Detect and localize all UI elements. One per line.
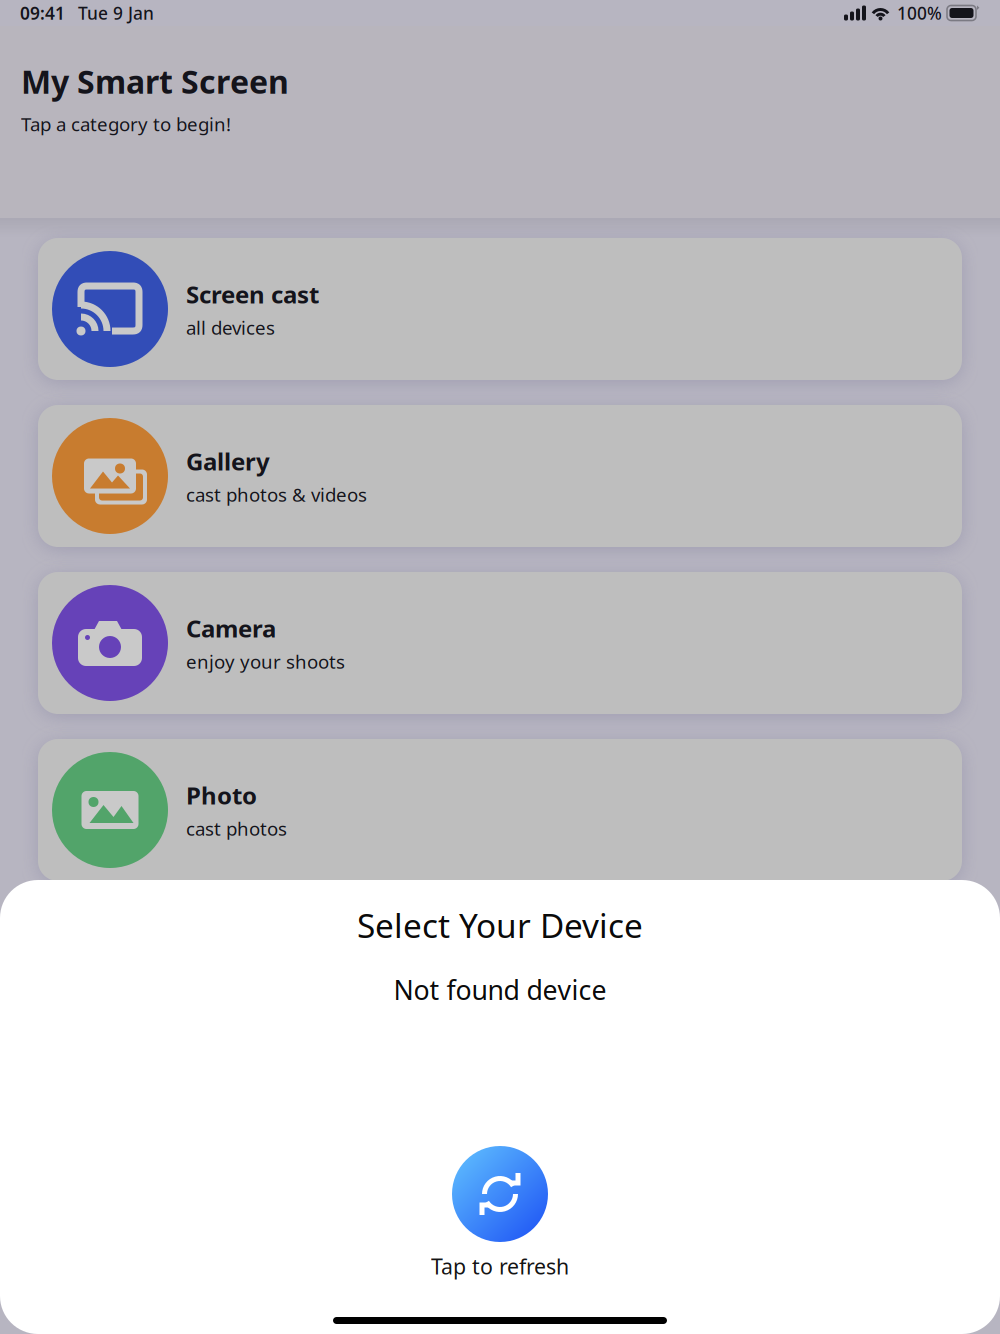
staticText: Gallery xyxy=(186,445,270,477)
staticText: cast photos xyxy=(186,816,287,841)
button[interactable]: Tap to refresh xyxy=(0,1146,1000,1280)
staticText: My Smart Screen xyxy=(21,60,289,102)
staticText: enjoy your shoots xyxy=(186,649,345,674)
staticText: 09:41 xyxy=(20,1,65,24)
staticText: Not found device xyxy=(393,972,606,1007)
button[interactable]: Camera xyxy=(38,572,962,714)
staticText: Select Your Device xyxy=(357,903,643,947)
button[interactable]: Screen cast xyxy=(38,238,962,380)
staticText: cast photos & videos xyxy=(186,482,367,507)
staticText: Tap a category to begin! xyxy=(21,111,231,136)
staticText: Tap to refresh xyxy=(431,1252,569,1280)
staticText: Camera xyxy=(186,612,276,644)
staticText: all devices xyxy=(186,315,275,340)
staticText: Photo xyxy=(186,779,257,811)
staticText: Screen cast xyxy=(186,278,319,310)
button[interactable]: Photo xyxy=(38,739,962,881)
staticText: Tue 9 Jan xyxy=(78,1,154,24)
staticText: 100% xyxy=(897,1,942,24)
button[interactable]: Gallery xyxy=(38,405,962,547)
